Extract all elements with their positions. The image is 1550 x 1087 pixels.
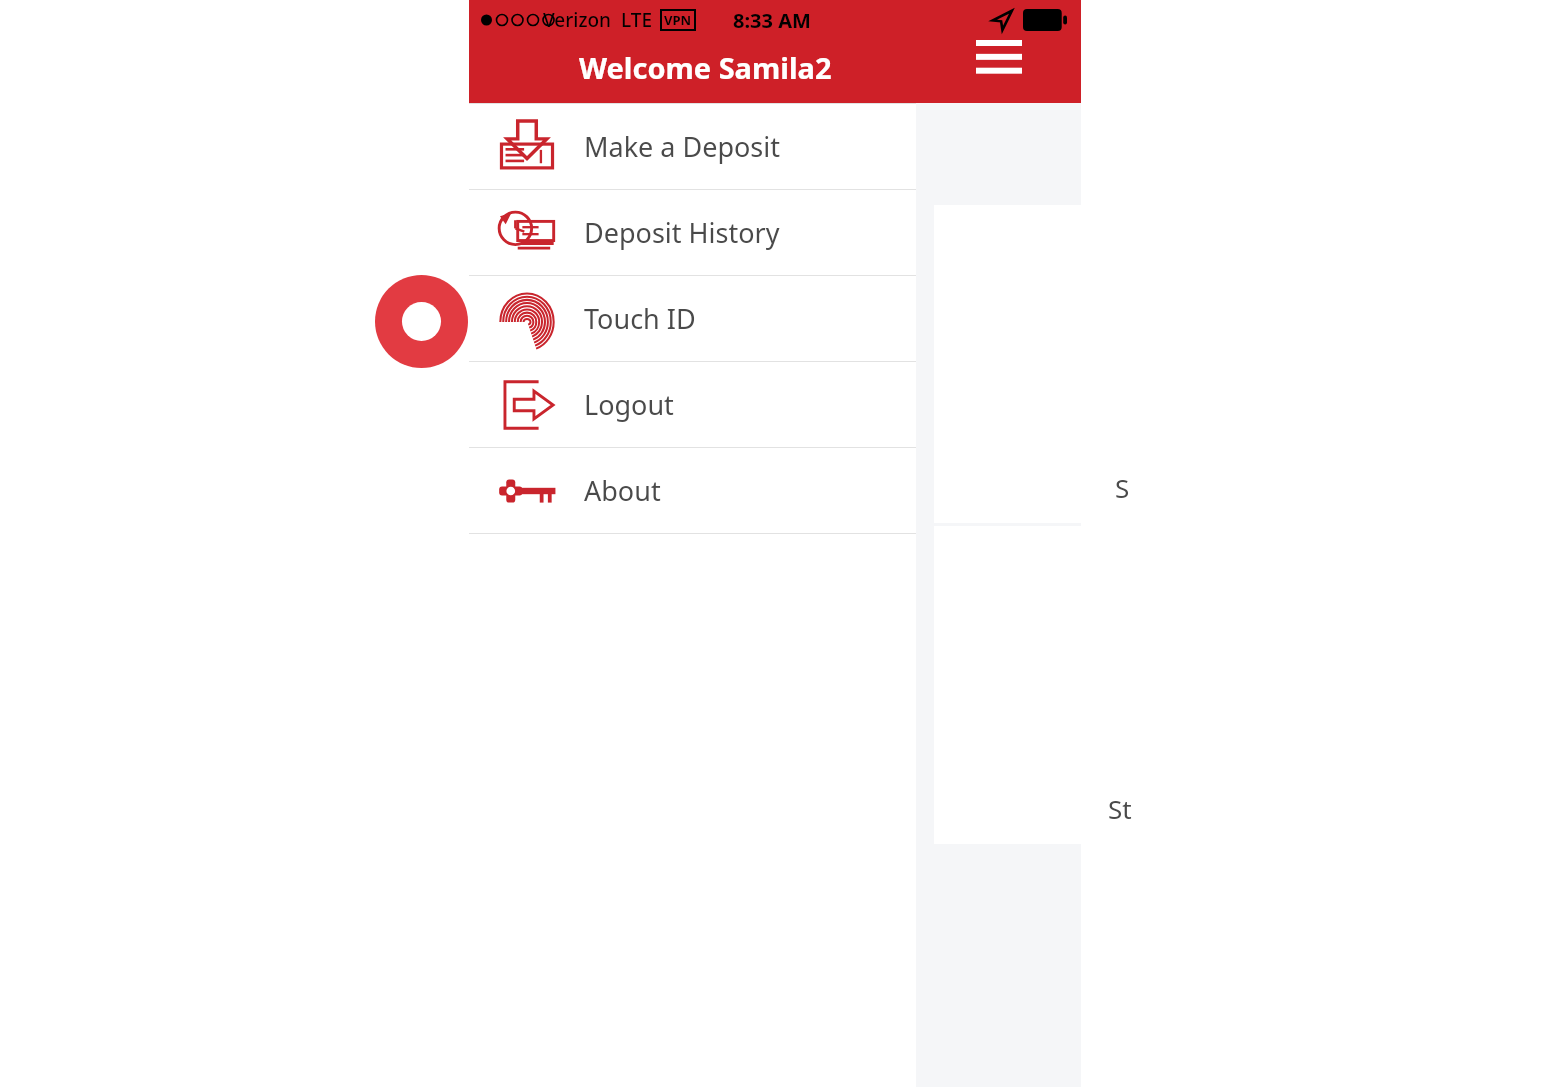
button[interactable]: Logout <box>469 361 916 447</box>
staticText: VPN <box>664 11 692 29</box>
staticText: 8:33 AM <box>733 7 811 34</box>
staticText: S <box>1115 470 1130 505</box>
staticText: LTE <box>621 7 653 33</box>
staticText: Deposit History <box>584 214 780 251</box>
staticText: Verizon <box>543 7 611 33</box>
button[interactable]: Make a Deposit <box>469 103 916 189</box>
button[interactable]: Deposit History <box>469 189 916 275</box>
staticText: About <box>584 472 661 509</box>
staticText: Welcome Samila2 <box>579 48 832 87</box>
staticText: Make a Deposit <box>584 128 780 165</box>
staticText: Touch ID <box>584 300 696 337</box>
button[interactable]: S <box>934 205 1134 523</box>
staticText: St <box>1108 791 1132 826</box>
button[interactable]: About <box>469 447 916 533</box>
staticText: Logout <box>584 386 674 423</box>
button[interactable]: Menu <box>916 0 1081 103</box>
button[interactable]: St <box>934 526 1134 844</box>
other: Loading <box>375 275 468 368</box>
button[interactable]: Touch ID <box>469 275 916 361</box>
